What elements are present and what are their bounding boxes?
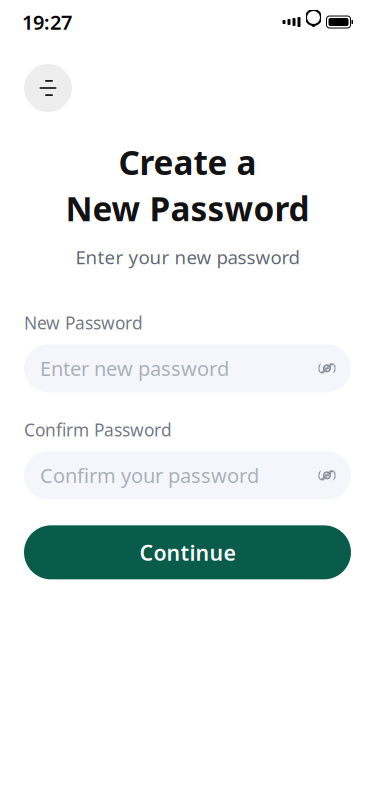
button[interactable]: Show password bbox=[310, 351, 344, 385]
button[interactable]: Continue bbox=[24, 525, 351, 579]
staticText: Enter new password bbox=[40, 355, 229, 382]
button[interactable]: Back bbox=[24, 64, 72, 112]
staticText: New Password bbox=[24, 311, 143, 334]
staticText: Confirm Password bbox=[24, 418, 172, 441]
staticText: Create a bbox=[118, 140, 256, 184]
staticText: Enter your new password bbox=[75, 244, 299, 269]
staticText: Continue bbox=[139, 538, 235, 566]
staticText: Confirm your password bbox=[40, 462, 259, 489]
button[interactable]: Show password bbox=[310, 458, 344, 492]
staticText: 19:27 bbox=[22, 9, 72, 35]
staticText: New Password bbox=[65, 186, 309, 231]
